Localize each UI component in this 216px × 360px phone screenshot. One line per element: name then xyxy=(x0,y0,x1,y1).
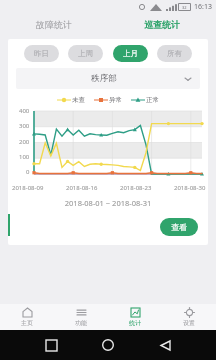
other: Recents xyxy=(46,340,57,351)
button[interactable]: 查看 xyxy=(160,218,198,236)
staticText: 2018-08-01 ~ 2018-08-31 xyxy=(8,198,208,208)
button[interactable]: 故障统计 xyxy=(0,14,108,34)
other: Home xyxy=(102,339,114,351)
staticText: 0 xyxy=(26,168,30,176)
staticText: 功能 xyxy=(75,319,87,327)
staticText: 400 xyxy=(19,107,30,115)
staticText: 32 xyxy=(182,5,187,10)
staticText: 300 xyxy=(19,122,30,130)
staticText: 主页 xyxy=(21,319,33,327)
staticText: 故障统计 xyxy=(36,19,72,30)
button[interactable]: 上周 xyxy=(68,45,103,62)
staticText: 100 xyxy=(19,153,30,161)
staticText: 昨日 xyxy=(34,49,49,58)
staticText: 巡查统计 xyxy=(144,19,180,30)
button[interactable]: 上月 xyxy=(113,45,148,62)
staticText: 2018-08-23 xyxy=(120,184,152,192)
staticText: 2018-08-16 xyxy=(66,184,98,192)
staticText: 统计 xyxy=(129,319,141,327)
button[interactable]: 功能 xyxy=(54,304,108,330)
staticText: 上月 xyxy=(123,49,138,58)
button[interactable]: 主页 xyxy=(0,304,54,330)
button[interactable]: 统计 xyxy=(108,304,162,330)
staticText: 未查 xyxy=(72,96,85,104)
button[interactable]: 秩序部 xyxy=(16,68,200,89)
staticText: 设置 xyxy=(183,319,195,327)
staticText: 查看 xyxy=(171,222,187,232)
staticText: 异常 xyxy=(109,96,122,104)
staticText: 上周 xyxy=(78,49,93,58)
button[interactable]: 设置 xyxy=(162,304,216,330)
button[interactable]: 巡查统计 xyxy=(108,14,216,34)
other: Back xyxy=(160,340,171,351)
staticText: 正常 xyxy=(146,96,159,104)
staticText: 2018-08-30 xyxy=(174,184,206,192)
button[interactable]: 所有 xyxy=(157,45,192,62)
staticText: 秩序部 xyxy=(24,73,184,84)
button[interactable]: 昨日 xyxy=(24,45,59,62)
staticText: 2018-08-09 xyxy=(12,184,44,192)
staticText: 所有 xyxy=(167,49,182,58)
other: Expand department xyxy=(184,75,192,83)
staticText: 200 xyxy=(19,138,30,146)
staticText: 16:13 xyxy=(194,2,212,12)
